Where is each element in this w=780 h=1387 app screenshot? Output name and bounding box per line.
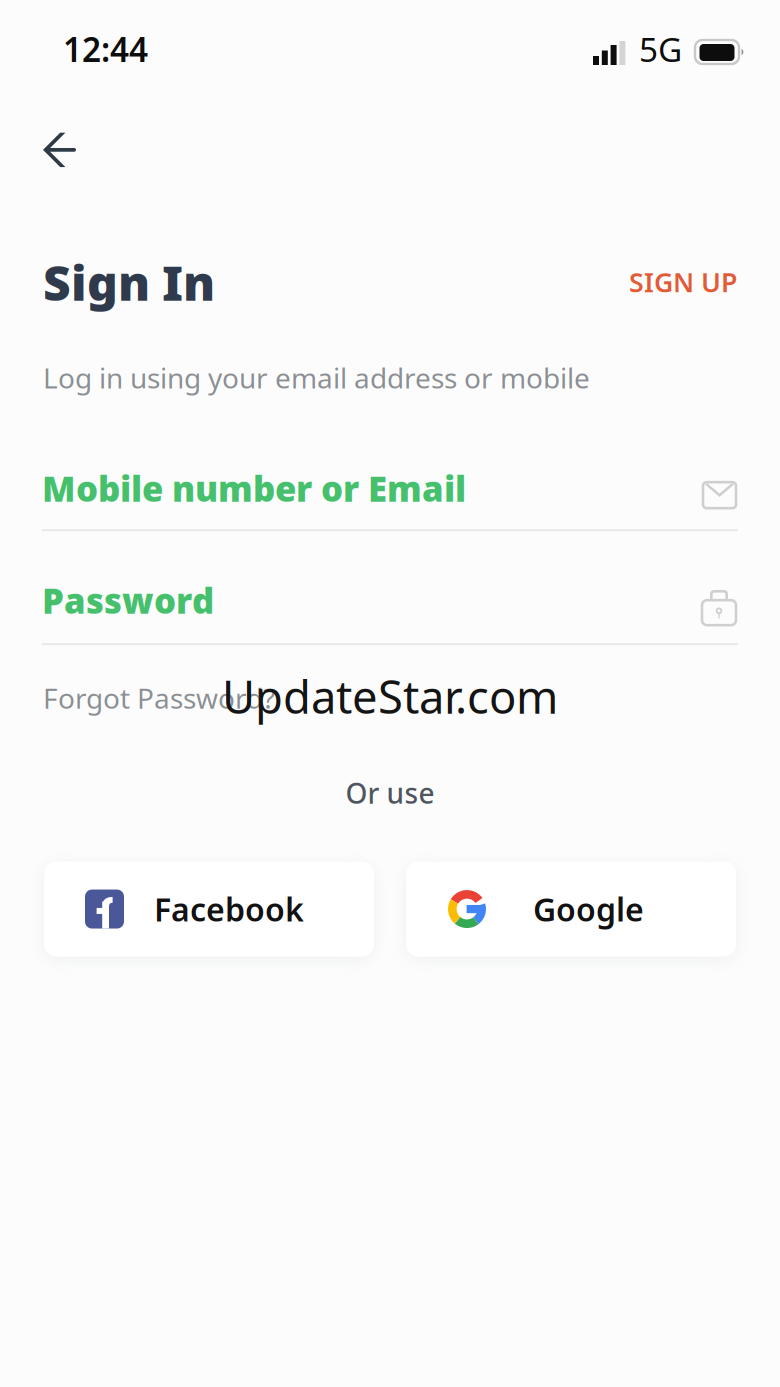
staticText: Or use <box>345 774 434 812</box>
button[interactable]: Forgot Password? <box>43 679 275 716</box>
staticText: 5G <box>639 27 682 71</box>
staticText: Password <box>42 577 214 623</box>
staticText: Facebook <box>154 888 304 930</box>
staticText: 12:44 <box>63 27 148 71</box>
staticText: Forgot Password? <box>43 679 275 716</box>
staticText: Log in using your email address or mobil… <box>43 359 590 396</box>
staticText: Google <box>533 888 644 930</box>
staticText: SIGN UP <box>629 264 737 300</box>
button[interactable]: Facebook <box>44 862 374 957</box>
staticText: Mobile number or Email <box>42 465 466 511</box>
button[interactable]: Google <box>406 862 736 957</box>
staticText: UpdateStar.com <box>222 666 558 726</box>
staticText: Sign In <box>43 250 215 314</box>
button[interactable]: SIGN UP <box>609 250 737 306</box>
button[interactable]: Back <box>32 122 88 177</box>
